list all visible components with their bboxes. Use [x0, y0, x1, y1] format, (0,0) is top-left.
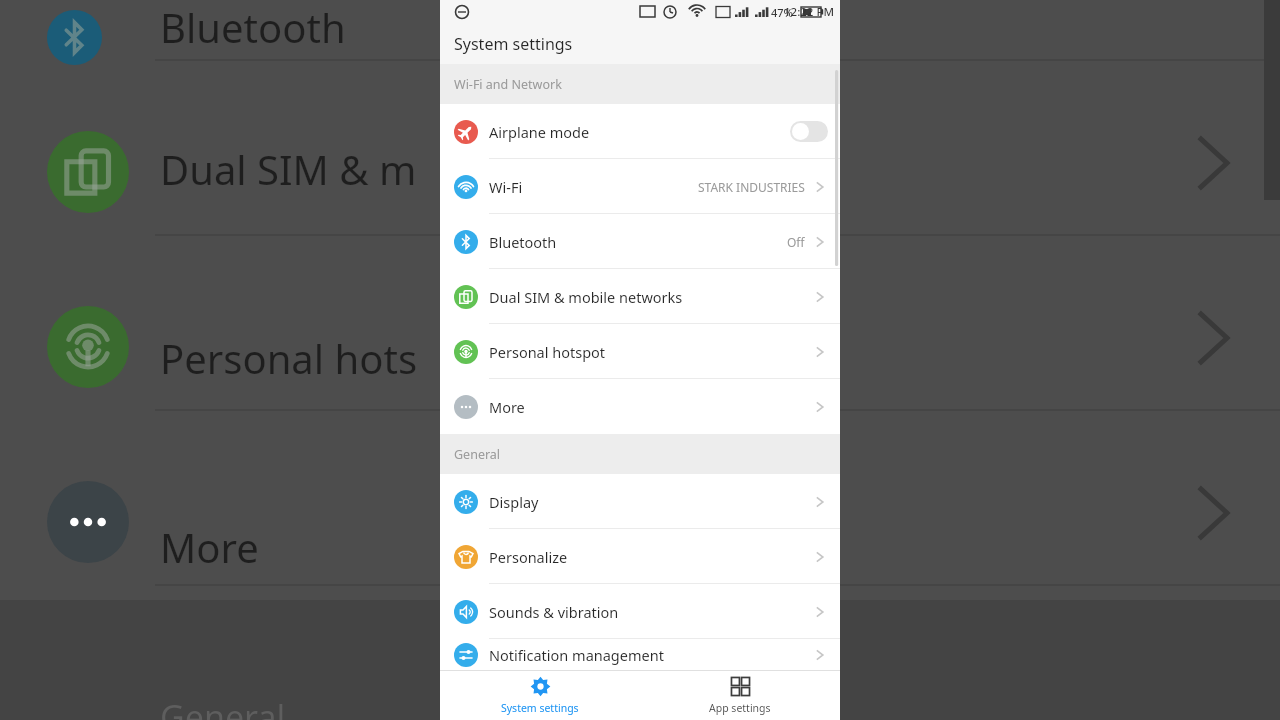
- button[interactable]: Personalize: [440, 529, 840, 584]
- button[interactable]: Notification management: [440, 639, 840, 670]
- staticText: Wi-Fi: [489, 177, 698, 197]
- staticText: Sounds & vibration: [489, 602, 812, 622]
- button[interactable]: Airplane mode: [440, 104, 840, 159]
- button[interactable]: Airplane mode toggle: [790, 121, 828, 142]
- button[interactable]: Dual SIM & mobile networks: [440, 269, 840, 324]
- staticText: Display: [489, 492, 812, 512]
- staticText: Notification management: [489, 645, 812, 665]
- button[interactable]: Wi-Fi: [440, 159, 840, 214]
- staticText: Off: [787, 234, 805, 250]
- button[interactable]: Personal hotspot: [440, 324, 840, 379]
- staticText: Personal hots: [160, 331, 418, 385]
- staticText: More: [160, 520, 259, 574]
- button[interactable]: Display: [440, 474, 840, 529]
- button[interactable]: System settings: [440, 670, 640, 720]
- staticText: Bluetooth: [489, 232, 787, 252]
- staticText: STARK INDUSTRIES: [698, 179, 805, 195]
- staticText: Dual SIM & mobile networks: [489, 287, 812, 307]
- staticText: Dual SIM & m: [160, 142, 417, 196]
- staticText: App settings: [709, 701, 771, 715]
- button[interactable]: Bluetooth: [440, 214, 840, 269]
- staticText: Airplane mode: [489, 122, 790, 142]
- staticText: System settings: [501, 701, 579, 715]
- button[interactable]: App settings: [640, 670, 840, 720]
- staticText: More: [489, 397, 812, 417]
- staticText: Wi-Fi and Network: [454, 76, 562, 93]
- staticText: Bluetooth: [160, 0, 346, 54]
- staticText: 12:22 PM: [784, 4, 835, 20]
- staticText: Personalize: [489, 547, 812, 567]
- staticText: General: [160, 694, 286, 720]
- button[interactable]: Sounds & vibration: [440, 584, 840, 639]
- staticText: 47%: [771, 5, 793, 20]
- staticText: Personal hotspot: [489, 342, 812, 362]
- button[interactable]: More: [440, 379, 840, 434]
- staticText: General: [454, 446, 501, 463]
- staticText: System settings: [454, 33, 573, 55]
